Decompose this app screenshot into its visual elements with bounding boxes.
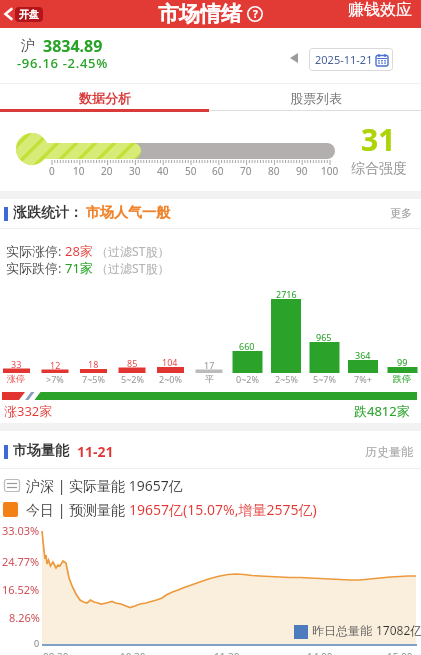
staticText: 85 (127, 357, 138, 369)
staticText: 0 (49, 164, 55, 178)
staticText: 8.26% (9, 610, 40, 625)
staticText: 14:00 (307, 650, 333, 655)
staticText: 10 (73, 164, 85, 178)
staticText: 股票列表 (290, 90, 342, 106)
staticText: 2716 (276, 288, 297, 300)
staticText: 17082亿 (376, 622, 421, 638)
staticText: 20 (101, 164, 113, 178)
staticText: 实际涨停: (6, 242, 65, 260)
staticText: 7~5% (82, 373, 105, 385)
staticText: 40 (157, 164, 169, 178)
staticText: 18 (88, 358, 99, 370)
staticText: 100 (321, 164, 339, 178)
staticText: 赚钱效应 (348, 0, 412, 20)
staticText: 12 (50, 359, 61, 371)
staticText: 0~2% (236, 373, 259, 385)
button[interactable]: 更多 (380, 200, 421, 226)
staticText: 综合强度 (351, 160, 407, 178)
button[interactable]: 市场情绪 (158, 1, 263, 27)
staticText: 33.03% (2, 523, 40, 538)
staticText: 2~0% (159, 373, 182, 385)
staticText: 市场量能 (13, 442, 69, 460)
staticText: 沪 (21, 37, 35, 55)
button[interactable]: 数据分析 (0, 84, 210, 112)
button[interactable] (290, 53, 299, 63)
staticText: >7% (46, 373, 64, 385)
staticText: 市场人气一般 (86, 204, 170, 222)
button[interactable]: 历史量能 (360, 440, 421, 462)
button[interactable]: 开盘 (2, 0, 43, 28)
button[interactable]: 股票列表 (210, 84, 421, 112)
staticText: 开盘 (19, 8, 39, 21)
staticText: 11:30 (214, 650, 240, 655)
staticText: 昨日总量能 (312, 622, 376, 638)
staticText: 11-21 (77, 442, 114, 461)
staticText: （过滤ST股） (93, 243, 170, 259)
staticText: 09:30 (43, 650, 69, 655)
staticText: 今日 | 预测量能 (26, 500, 129, 519)
staticText: 99 (397, 356, 408, 368)
staticText: 364 (355, 349, 371, 361)
staticText: 71家 (65, 259, 93, 277)
staticText: 16.52% (2, 582, 40, 597)
staticText: 数据分析 (79, 90, 131, 106)
staticText: 15:00 (387, 650, 413, 655)
staticText: 市场情绪 (158, 1, 242, 27)
staticText: 平 (205, 373, 214, 384)
staticText: 19657亿(15.07%,增量2575亿) (129, 500, 317, 519)
staticText: （过滤ST股） (93, 260, 170, 276)
staticText: 965 (316, 331, 332, 343)
staticText: 7%+ (354, 373, 372, 385)
staticText: 80 (268, 164, 280, 178)
staticText: 跌停 (393, 373, 411, 384)
staticText: 5~7% (313, 373, 336, 385)
staticText: 660 (239, 340, 255, 352)
staticText: 31 (361, 119, 396, 160)
staticText: 24.77% (2, 554, 40, 569)
button[interactable] (344, 0, 421, 28)
staticText: 涨332家 (4, 402, 53, 420)
staticText: 2025-11-21 (315, 52, 373, 67)
staticText: 沪深 | 实际量能 19657亿 (26, 476, 183, 495)
staticText: -96.16 -2.45% (17, 54, 109, 72)
button[interactable]: 2025-11-21 (309, 48, 393, 71)
staticText: 实际跌停: (6, 259, 65, 277)
staticText: 2~5% (275, 373, 298, 385)
staticText: 更多 (390, 206, 412, 220)
staticText: 30 (129, 164, 141, 178)
staticText: 涨停 (7, 373, 25, 384)
staticText: 涨跌统计： (13, 204, 83, 222)
staticText: 70 (240, 164, 252, 178)
staticText: 90 (296, 164, 308, 178)
staticText: 60 (212, 164, 224, 178)
staticText: 0 (34, 637, 40, 649)
staticText: 104 (162, 356, 178, 368)
staticText: 50 (185, 164, 197, 178)
staticText: 33 (11, 358, 22, 370)
staticText: 17 (204, 359, 215, 371)
staticText: 28家 (65, 242, 93, 260)
staticText: 10:30 (120, 650, 146, 655)
staticText: ? (253, 7, 258, 21)
staticText: 5~2% (121, 373, 144, 385)
staticText: 3834.89 (43, 35, 103, 57)
staticText: 历史量能 (365, 444, 413, 459)
staticText: 跌4812家 (354, 402, 410, 420)
